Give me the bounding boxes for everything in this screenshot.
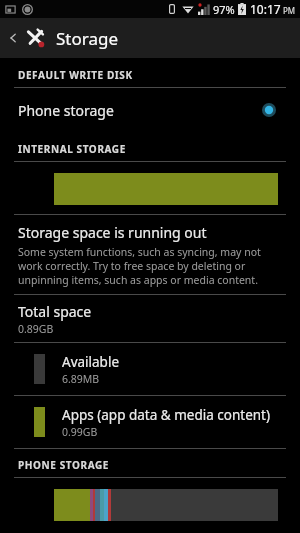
staticText: Some system functions, such as syncing, …: [18, 245, 282, 287]
staticText: Storage space is running out: [18, 223, 207, 242]
staticText: INTERNAL STORAGE: [18, 142, 126, 156]
staticText: 6.89MB: [62, 372, 100, 386]
staticText: 97%: [213, 2, 235, 17]
staticText: PHONE STORAGE: [18, 458, 110, 472]
button[interactable]: Total space: [0, 302, 300, 336]
staticText: DEFAULT WRITE DISK: [18, 68, 133, 82]
button[interactable]: Available: [0, 343, 300, 395]
button[interactable]: Back: [0, 18, 300, 58]
staticText: 0.99GB: [62, 425, 98, 439]
other: Back: [8, 33, 18, 43]
button[interactable]: Phone storage: [0, 88, 300, 132]
staticText: 0.89GB: [18, 322, 54, 336]
staticText: Total space: [18, 302, 92, 321]
staticText: Storage: [56, 27, 119, 50]
staticText: Available: [62, 353, 119, 371]
staticText: 10:17: [250, 1, 281, 17]
button[interactable]: Apps (app data & media content): [0, 396, 300, 448]
staticText: Phone storage: [18, 101, 114, 120]
staticText: Apps (app data & media content): [62, 406, 271, 424]
staticText: PM: [283, 5, 296, 16]
